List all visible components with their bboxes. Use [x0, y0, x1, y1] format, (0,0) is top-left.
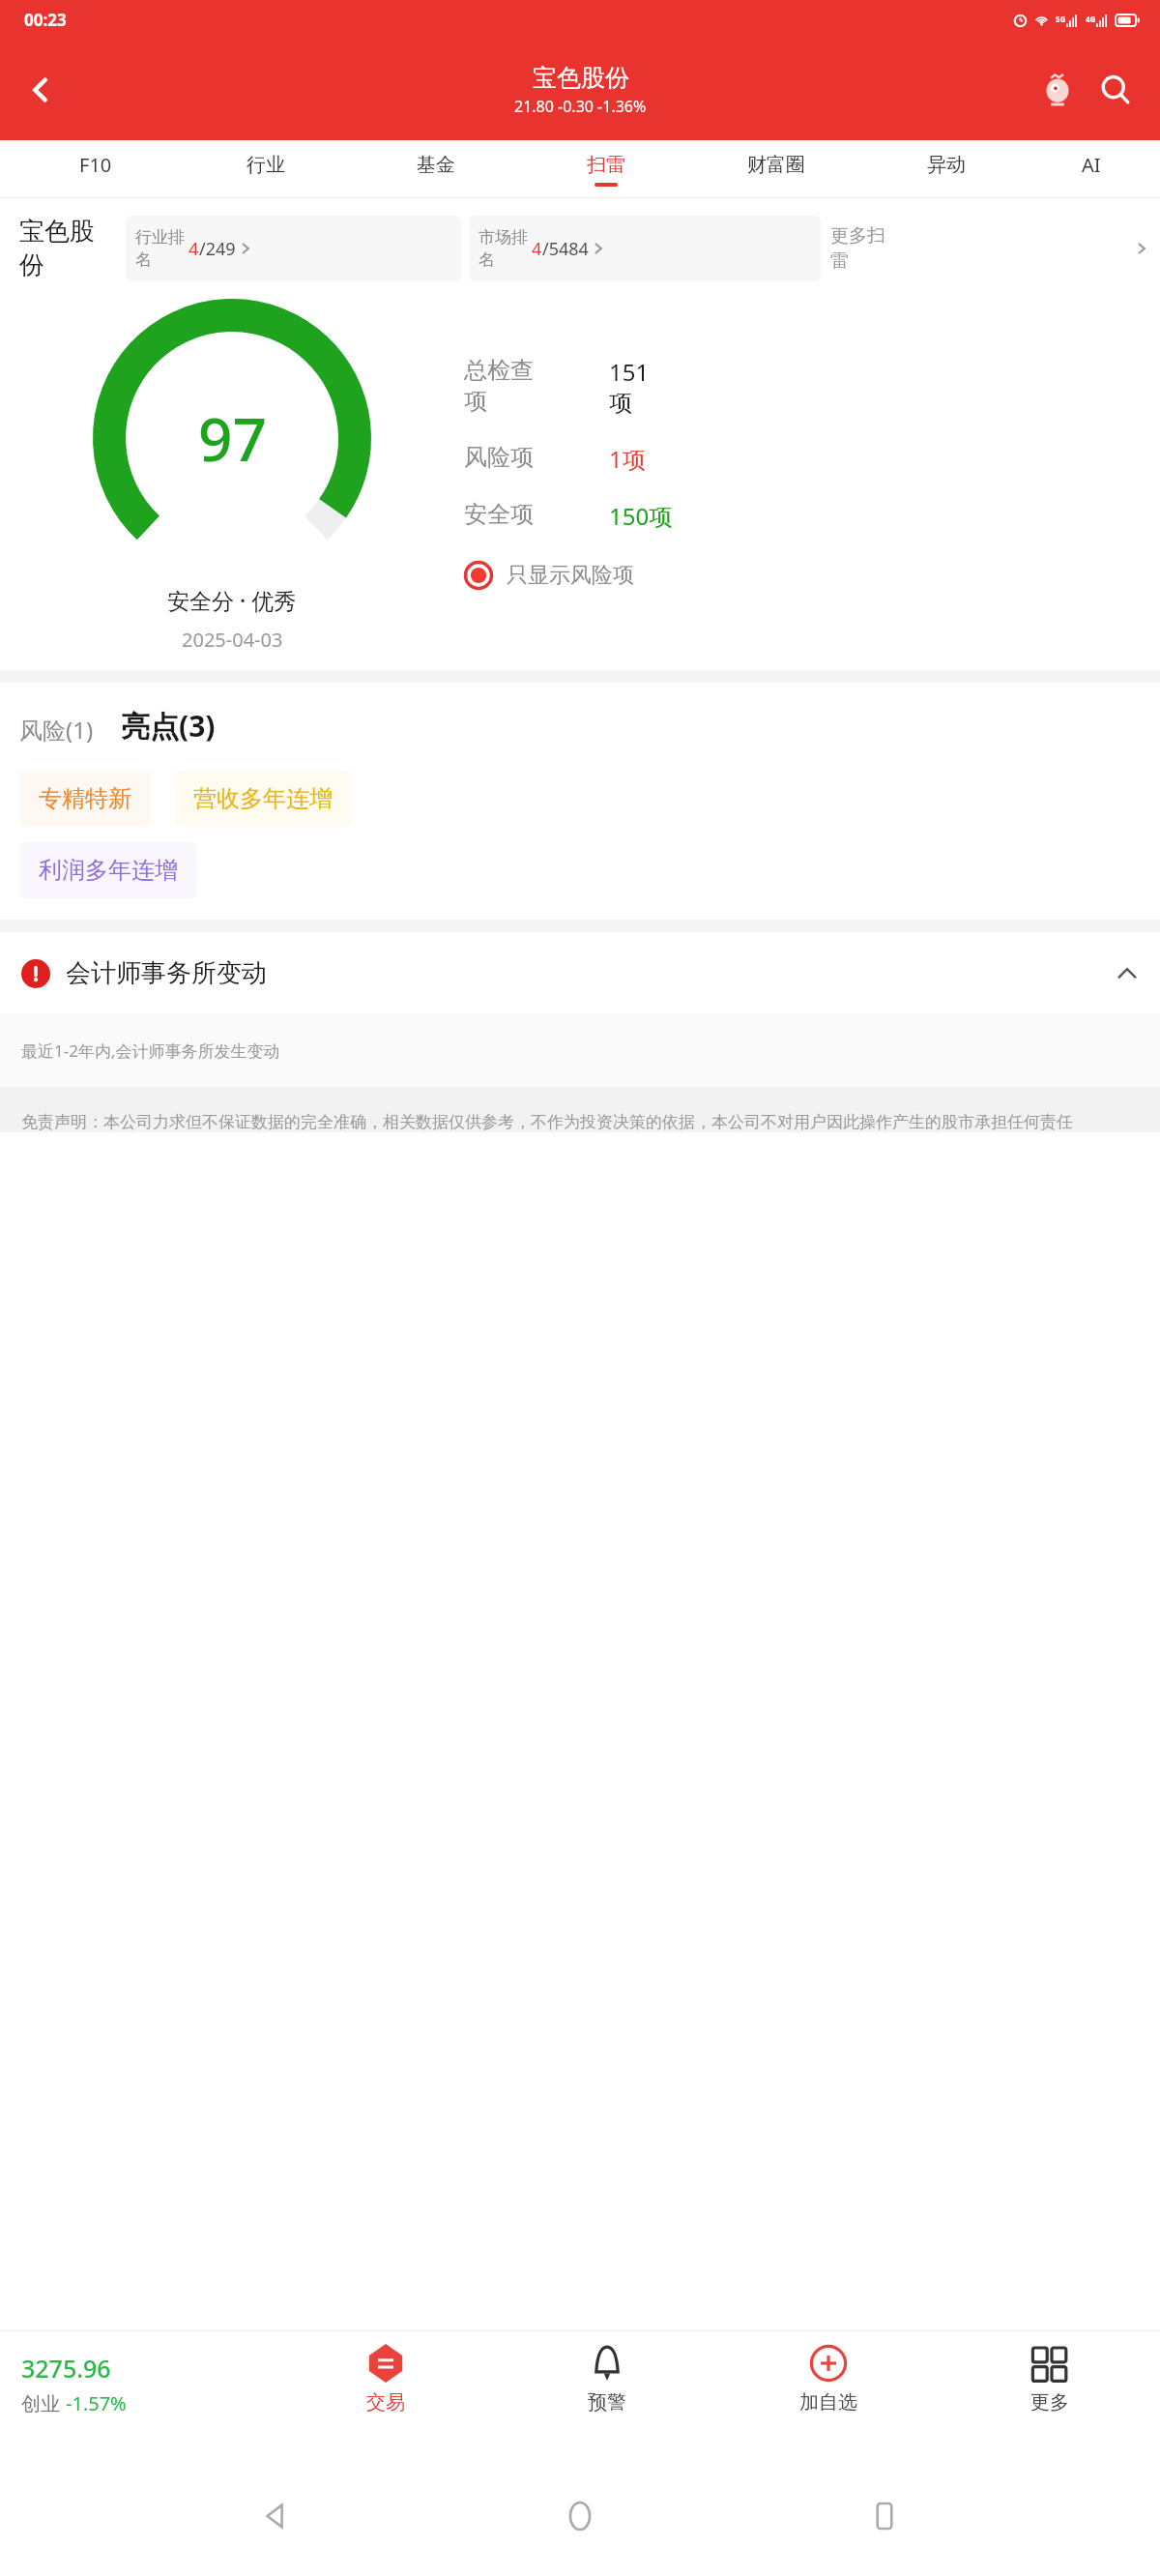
button[interactable]: Assistant	[1029, 61, 1087, 119]
button[interactable]: 3275.96	[0, 2338, 275, 2456]
staticText: 加自选	[799, 2390, 857, 2415]
button[interactable]: 财富圈	[691, 140, 861, 198]
button[interactable]: 行业排 名	[126, 216, 461, 281]
staticText: 扫雷	[587, 153, 625, 177]
staticText: 总检查 项	[464, 356, 609, 416]
button[interactable]: 只显示风险项	[464, 561, 634, 590]
button[interactable]: Search	[1087, 61, 1145, 119]
staticText: 专精特新	[39, 784, 131, 813]
button[interactable]: 更多扫 雷	[830, 224, 1148, 273]
staticText: 4	[188, 237, 199, 261]
button[interactable]: Home	[551, 2487, 609, 2545]
button[interactable]: 营收多年连增	[174, 771, 352, 827]
staticText: 预警	[588, 2390, 626, 2415]
staticText: 会计师事务所变动	[66, 957, 1116, 989]
button[interactable]: Recents	[855, 2487, 913, 2545]
button[interactable]: Back	[246, 2487, 304, 2545]
staticText: 宝色股 份	[19, 216, 126, 281]
button[interactable]: 利润多年连增	[19, 842, 197, 898]
staticText: 行业排 名	[135, 227, 185, 270]
staticText: 4	[532, 237, 542, 261]
staticText: 00:23	[24, 9, 67, 31]
staticText: 安全分 · 优秀	[167, 585, 297, 615]
button[interactable]: 加自选	[717, 2338, 939, 2456]
staticText: 风险(1)	[19, 714, 94, 746]
staticText: 交易	[366, 2390, 405, 2415]
staticText: 财富圈	[747, 153, 805, 177]
button[interactable]: 交易	[275, 2338, 496, 2456]
button[interactable]: 市场排 名	[469, 216, 821, 281]
button[interactable]: 更多	[939, 2338, 1160, 2456]
button[interactable]: 基金	[351, 140, 521, 198]
button[interactable]: 风险(1)	[19, 714, 94, 746]
staticText: 最近1-2年内,会计师事务所发生变动	[21, 1039, 280, 1062]
button[interactable]: 行业	[181, 140, 351, 198]
staticText: AI	[1082, 152, 1101, 178]
staticText: 5G	[1056, 14, 1066, 24]
staticText: 利润多年连增	[39, 856, 178, 885]
staticText: 更多	[1030, 2390, 1069, 2415]
staticText: 更多扫 雷	[830, 224, 1135, 273]
staticText: /249	[199, 237, 236, 261]
staticText: 行业	[246, 153, 285, 177]
staticText: 150项	[609, 500, 673, 532]
button[interactable]: AI	[1031, 140, 1150, 198]
staticText: 免责声明：本公司力求但不保证数据的完全准确，相关数据仅供参考，不作为投资决策的依…	[21, 1112, 1073, 1132]
button[interactable]: 预警	[496, 2338, 717, 2456]
button[interactable]: Back	[14, 63, 68, 117]
staticText: 营收多年连增	[193, 784, 333, 813]
staticText: 97	[198, 397, 267, 479]
staticText: 基金	[417, 153, 455, 177]
staticText: 21.80 -0.30 -1.36%	[514, 96, 647, 117]
staticText: 宝色股份	[533, 63, 629, 93]
staticText: /5484	[542, 237, 589, 261]
staticText: 风险项	[464, 443, 609, 472]
button[interactable]: 扫雷	[521, 140, 691, 198]
staticText: 创业	[21, 2390, 66, 2416]
staticText: 2025-04-03	[182, 627, 283, 653]
button[interactable]: 会计师事务所变动	[0, 932, 1160, 1014]
staticText: 3275.96	[21, 2352, 111, 2385]
staticText: 只显示风险项	[507, 562, 634, 589]
staticText: 市场排 名	[478, 227, 528, 270]
staticText: 4G	[1086, 14, 1096, 24]
staticText: 151 项	[609, 356, 650, 418]
button[interactable]: 异动	[861, 140, 1031, 198]
staticText: 异动	[927, 153, 966, 177]
staticText: 1项	[609, 443, 646, 475]
button[interactable]: 亮点(3)	[121, 706, 216, 746]
staticText: 安全项	[464, 500, 609, 529]
button[interactable]: 专精特新	[19, 771, 151, 827]
button[interactable]: F10	[10, 140, 181, 198]
staticText: 亮点(3)	[121, 706, 216, 746]
staticText: F10	[79, 152, 112, 178]
staticText: -1.57%	[66, 2390, 127, 2416]
